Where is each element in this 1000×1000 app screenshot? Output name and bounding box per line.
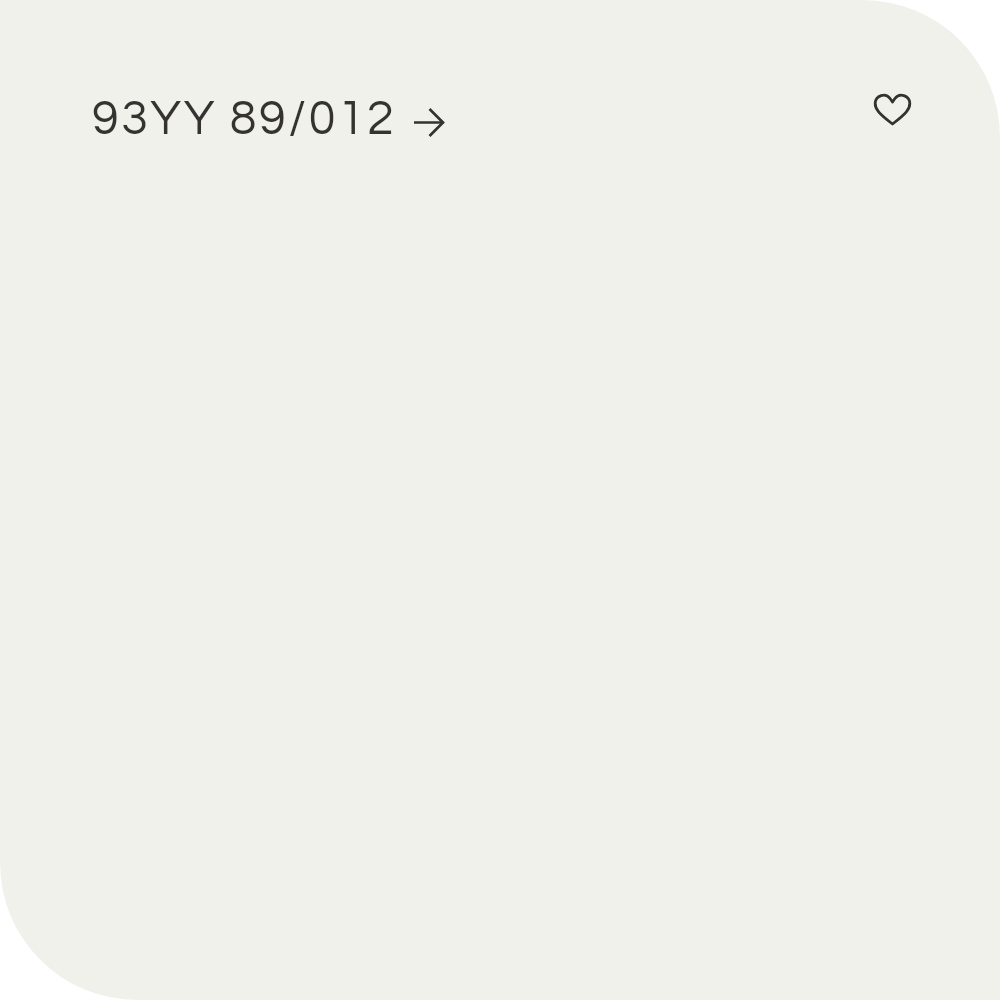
staticText: 93YY 89/012: [92, 94, 397, 144]
button[interactable]: Add to favourites: [862, 79, 922, 139]
button[interactable]: 93YY 89/012: [78, 84, 457, 154]
